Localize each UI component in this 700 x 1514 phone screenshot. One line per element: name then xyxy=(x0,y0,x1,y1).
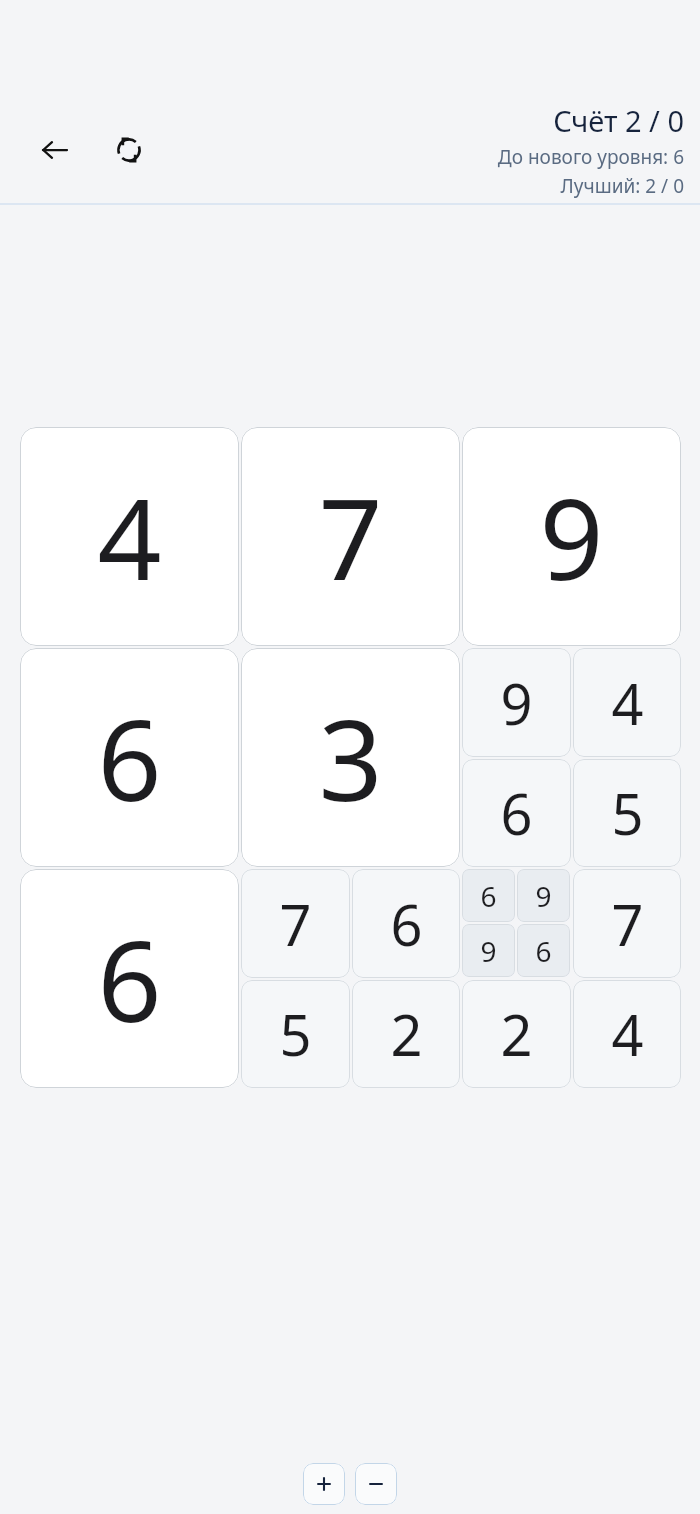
button[interactable]: 7 xyxy=(241,427,460,646)
staticText: Лучший: 2 / 0 xyxy=(560,173,684,199)
staticText: 6 xyxy=(535,932,552,970)
staticText: 9 xyxy=(539,460,604,613)
staticText: Счёт 2 / 0 xyxy=(553,101,684,140)
button[interactable]: 5 xyxy=(573,759,681,867)
button[interactable]: 6 xyxy=(20,869,239,1088)
staticText: 6 xyxy=(97,902,162,1055)
button[interactable]: 4 xyxy=(20,427,239,646)
button[interactable]: 5 xyxy=(241,980,350,1088)
button[interactable]: 6 xyxy=(462,759,571,867)
staticText: 7 xyxy=(611,886,644,962)
button[interactable]: 7 xyxy=(241,869,350,978)
staticText: 5 xyxy=(279,996,312,1072)
staticText: 7 xyxy=(279,886,312,962)
staticText: 2 xyxy=(500,996,533,1072)
button[interactable]: 3 xyxy=(241,648,460,867)
staticText: 9 xyxy=(480,932,497,970)
staticText: 4 xyxy=(611,665,644,741)
staticText: 4 xyxy=(611,996,644,1072)
staticText: До нового уровня: 6 xyxy=(497,144,684,170)
staticText: 3 xyxy=(318,681,383,834)
button[interactable]: Decrease size xyxy=(355,1463,397,1505)
staticText: 4 xyxy=(97,460,162,613)
button[interactable]: 9 xyxy=(462,648,571,757)
button[interactable]: 2 xyxy=(352,980,460,1088)
button[interactable]: 2 xyxy=(462,980,571,1088)
button[interactable]: 4 xyxy=(573,980,681,1088)
button[interactable]: 9 xyxy=(462,427,681,646)
button[interactable]: 6 xyxy=(20,648,239,867)
button[interactable]: 6 xyxy=(517,924,570,977)
button[interactable]: 9 xyxy=(517,869,570,922)
staticText: 5 xyxy=(611,775,644,851)
staticText: 9 xyxy=(535,877,552,915)
button[interactable]: 6 xyxy=(352,869,460,978)
button[interactable]: Restart xyxy=(102,123,156,177)
staticText: 9 xyxy=(500,665,533,741)
staticText: 6 xyxy=(500,775,533,851)
button[interactable]: 4 xyxy=(573,648,681,757)
button[interactable]: 9 xyxy=(462,924,515,977)
staticText: 6 xyxy=(390,886,423,962)
button[interactable]: 6 xyxy=(462,869,515,922)
staticText: 7 xyxy=(318,460,383,613)
staticText: 6 xyxy=(480,877,497,915)
button[interactable]: Back xyxy=(28,123,82,177)
button[interactable]: Increase size xyxy=(303,1463,345,1505)
staticText: 2 xyxy=(390,996,423,1072)
button[interactable]: 7 xyxy=(573,869,681,978)
staticText: 6 xyxy=(97,681,162,834)
